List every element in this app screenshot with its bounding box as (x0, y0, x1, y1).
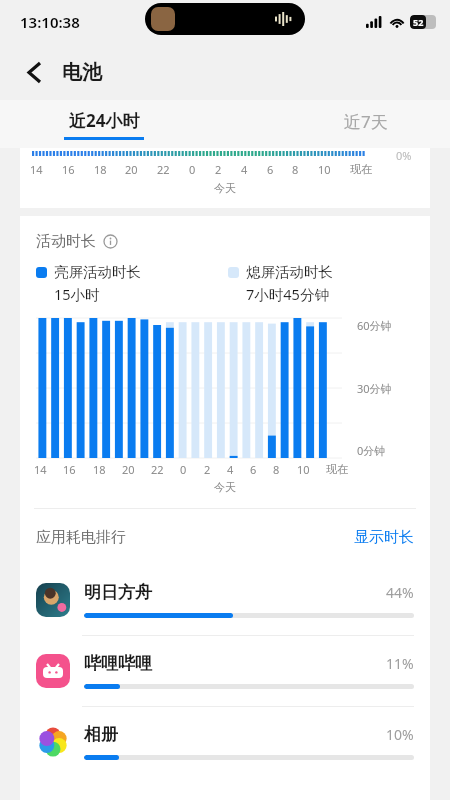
button[interactable]: 哔哩哔哩 (20, 636, 430, 706)
button[interactable]: Back (16, 54, 52, 90)
staticText: 16 (63, 462, 76, 477)
staticText: 10 (297, 462, 310, 477)
button[interactable]: 近7天 (344, 110, 388, 133)
staticText: 20 (125, 162, 138, 177)
button[interactable]: 显示时长 (354, 528, 414, 547)
staticText: 52 (413, 16, 424, 28)
staticText: 今天 (214, 181, 236, 195)
staticText: 亮屏活动时长 (54, 263, 141, 281)
staticText: 18 (93, 462, 106, 477)
button[interactable]: 近24小时 (64, 109, 144, 140)
staticText: 7小时45分钟 (246, 284, 329, 304)
staticText: 10 (318, 162, 331, 177)
staticText: 近24小时 (69, 109, 140, 132)
staticText: 30分钟 (357, 381, 392, 396)
staticText: 电池 (62, 60, 102, 85)
staticText: 16 (62, 162, 75, 177)
button[interactable]: 相册 (20, 707, 430, 777)
staticText: 2 (204, 462, 211, 477)
button[interactable]: Info (103, 234, 118, 249)
staticText: 15小时 (54, 284, 100, 304)
staticText: 明日方舟 (84, 582, 152, 603)
staticText: 熄屏活动时长 (246, 263, 333, 281)
staticText: 现在 (326, 462, 348, 476)
staticText: 8 (273, 462, 280, 477)
staticText: 18 (94, 162, 107, 177)
staticText: 应用耗电排行 (36, 528, 126, 547)
staticText: 14 (30, 162, 43, 177)
staticText: 4 (227, 462, 234, 477)
button[interactable]: 明日方舟 (20, 565, 430, 635)
staticText: 14 (34, 462, 47, 477)
staticText: 0 (189, 162, 196, 177)
staticText: 60分钟 (357, 318, 392, 333)
staticText: 现在 (350, 162, 372, 176)
staticText: 相册 (84, 724, 118, 745)
staticText: 6 (267, 162, 274, 177)
staticText: 6 (250, 462, 257, 477)
staticText: 活动时长 (36, 232, 96, 251)
staticText: 20 (122, 462, 135, 477)
staticText: 10% (386, 725, 414, 744)
staticText: 44% (386, 583, 414, 602)
staticText: 22 (157, 162, 170, 177)
staticText: 11% (386, 654, 414, 673)
staticText: 0 (180, 462, 187, 477)
staticText: 0% (396, 148, 412, 163)
staticText: 4 (241, 162, 248, 177)
staticText: 0分钟 (357, 443, 386, 458)
staticText: 13:10:38 (20, 12, 80, 32)
staticText: 8 (292, 162, 299, 177)
staticText: 今天 (214, 480, 236, 494)
staticText: 22 (151, 462, 164, 477)
staticText: 2 (215, 162, 222, 177)
staticText: 哔哩哔哩 (84, 653, 152, 674)
